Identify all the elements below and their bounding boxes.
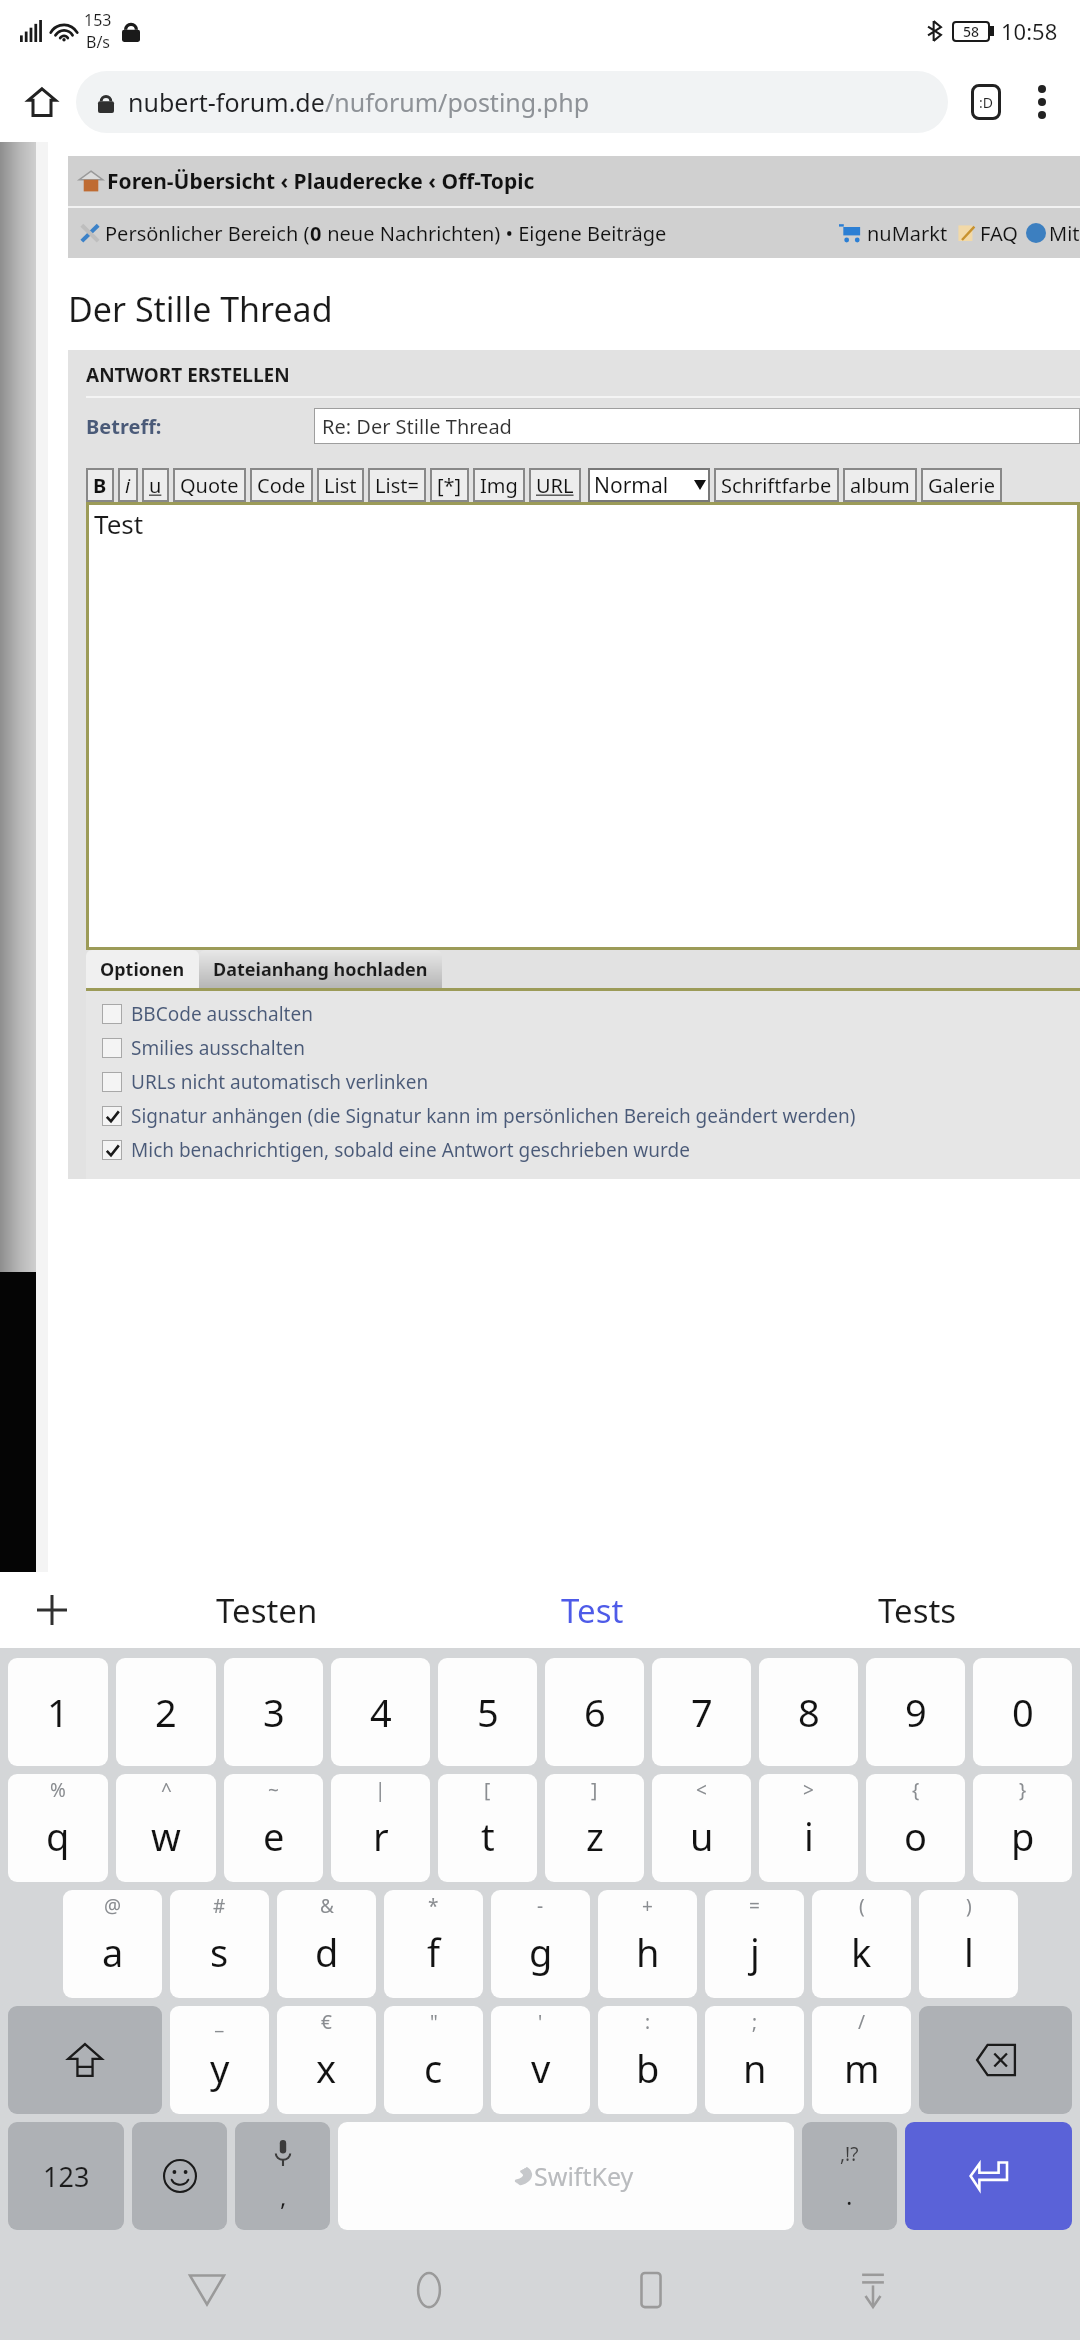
button[interactable]: Quote — [173, 468, 246, 502]
button[interactable]: album — [843, 468, 917, 502]
staticText: [*] — [437, 472, 462, 499]
staticText: Testen — [216, 1588, 318, 1633]
button[interactable]: Schriftfarbe — [714, 468, 839, 502]
staticText: w — [151, 1810, 181, 1862]
button[interactable]: Enter — [905, 2122, 1072, 2230]
button[interactable]: ~ — [224, 1774, 323, 1882]
button[interactable]: Re: Der Stille Thread — [314, 408, 1080, 444]
button[interactable]: > — [759, 1774, 858, 1882]
button[interactable]: / — [812, 2006, 911, 2114]
staticText: List= — [375, 472, 419, 499]
button[interactable]: URL — [529, 468, 581, 502]
staticText: ,!? — [840, 2141, 859, 2167]
button[interactable]: 0 — [973, 1658, 1072, 1766]
button[interactable]: Optionen — [86, 950, 199, 988]
button[interactable]: ( — [812, 1890, 911, 1998]
button[interactable]: @ — [63, 1890, 162, 1998]
button[interactable]: Test — [86, 502, 1080, 950]
staticText: v — [531, 2042, 551, 2094]
button[interactable]: ; — [705, 2006, 804, 2114]
button[interactable]: 4 — [331, 1658, 430, 1766]
button[interactable]: ) — [919, 1890, 1018, 1998]
staticText: Quote — [180, 472, 239, 499]
button[interactable]: [*] — [430, 468, 469, 502]
button[interactable]: B — [86, 468, 114, 502]
button[interactable]: Tests — [755, 1572, 1080, 1648]
button[interactable]: Backspace — [919, 2006, 1072, 2114]
button[interactable]: Testen — [104, 1572, 430, 1648]
button[interactable]: Home — [385, 2246, 473, 2334]
staticText: ) — [966, 1893, 972, 1919]
button[interactable]: 7 — [652, 1658, 751, 1766]
button[interactable]: Hide keyboard — [829, 2246, 917, 2334]
button[interactable]: List= — [368, 468, 426, 502]
button[interactable]: Test — [430, 1572, 755, 1648]
button[interactable]: u — [142, 468, 169, 502]
button[interactable]: = — [705, 1890, 804, 1998]
button[interactable]: i — [118, 468, 138, 502]
button[interactable]: 5 — [438, 1658, 537, 1766]
button[interactable]: Tabs — [958, 74, 1014, 130]
button[interactable]: + — [598, 1890, 697, 1998]
button[interactable]: " — [384, 2006, 483, 2114]
staticText: x — [316, 2042, 337, 2094]
button[interactable]: More options — [1014, 74, 1070, 130]
button[interactable]: 123 — [8, 2122, 124, 2230]
button[interactable]: [ — [438, 1774, 537, 1882]
staticText: s — [210, 1926, 229, 1978]
button[interactable]: Back — [163, 2246, 251, 2334]
button[interactable]: nubert-forum.de — [76, 71, 948, 133]
button[interactable]: URLs nicht automatisch verlinken — [86, 1065, 1080, 1099]
button[interactable]: ^ — [116, 1774, 216, 1882]
button[interactable]: - — [491, 1890, 590, 1998]
button[interactable]: * — [384, 1890, 483, 1998]
staticText: BBCode ausschalten — [131, 1001, 313, 1027]
button[interactable]: 3 — [224, 1658, 323, 1766]
button[interactable]: & — [277, 1890, 376, 1998]
staticText: " — [430, 2009, 438, 2035]
staticText: z — [586, 1810, 604, 1862]
staticText: Betreff: — [86, 413, 162, 440]
staticText: Signatur anhängen (die Signatur kann im … — [131, 1103, 856, 1129]
button[interactable]: Shift — [8, 2006, 162, 2114]
button[interactable]: # — [170, 1890, 269, 1998]
button[interactable]: 9 — [866, 1658, 965, 1766]
button[interactable]: € — [277, 2006, 376, 2114]
button[interactable]: : — [598, 2006, 697, 2114]
button[interactable]: _ — [170, 2006, 269, 2114]
button[interactable]: ] — [545, 1774, 644, 1882]
staticText: e — [263, 1810, 285, 1862]
button[interactable]: Normal — [588, 468, 710, 502]
button[interactable]: % — [8, 1774, 108, 1882]
button[interactable]: Add word — [0, 1572, 104, 1648]
button[interactable]: Voice input — [235, 2122, 330, 2230]
button[interactable]: Galerie — [921, 468, 1002, 502]
button[interactable]: List — [317, 468, 364, 502]
button[interactable]: BBCode ausschalten — [86, 997, 1080, 1031]
staticText: Dateianhang hochladen — [213, 957, 428, 982]
button[interactable]: Img — [473, 468, 525, 502]
button[interactable]: Code — [250, 468, 313, 502]
button[interactable]: 2 — [116, 1658, 216, 1766]
button[interactable]: Smilies ausschalten — [86, 1031, 1080, 1065]
button[interactable]: Home — [14, 74, 70, 130]
button[interactable]: Dateianhang hochladen — [199, 950, 442, 988]
staticText: 6 — [584, 1686, 606, 1738]
button[interactable]: Recents — [607, 2246, 695, 2334]
button[interactable]: < — [652, 1774, 751, 1882]
staticText: 5 — [477, 1686, 499, 1738]
button[interactable]: Signatur anhängen (die Signatur kann im … — [86, 1099, 1080, 1133]
button[interactable]: Emoji — [132, 2122, 227, 2230]
button[interactable]: ,!? — [802, 2122, 897, 2230]
button[interactable]: 6 — [545, 1658, 644, 1766]
button[interactable]: ' — [491, 2006, 590, 2114]
staticText: :D — [979, 93, 993, 112]
button[interactable]: { — [866, 1774, 965, 1882]
button[interactable]: } — [973, 1774, 1072, 1882]
staticText: _ — [215, 2009, 224, 2035]
button[interactable]: 8 — [759, 1658, 858, 1766]
button[interactable]: | — [331, 1774, 430, 1882]
button[interactable]: 1 — [8, 1658, 108, 1766]
button[interactable]: Space — [338, 2122, 794, 2230]
button[interactable]: Mich benachrichtigen, sobald eine Antwor… — [86, 1133, 1080, 1167]
